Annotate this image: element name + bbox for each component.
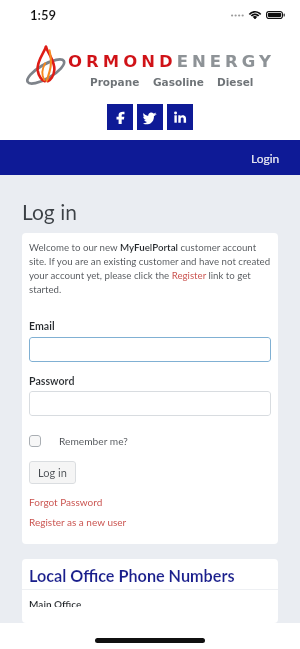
button[interactable]: LinkedIn [167,104,193,130]
staticText: Welcome to our new MyFuelPortal customer… [29,241,271,295]
button[interactable]: Twitter [137,104,163,130]
button[interactable]: Register as a new user [29,516,127,528]
button[interactable]: Forgot Password [29,496,103,508]
button[interactable]: Email input [29,337,271,362]
staticText: Register as a new user [29,516,127,528]
staticText: Password [29,375,75,388]
button[interactable]: Remember me? [29,435,128,447]
button[interactable]: Password input [29,391,271,416]
staticText: Gasoline [153,76,204,88]
staticText: Forgot Password [29,496,103,508]
button[interactable]: Log in [29,461,76,484]
staticText: Remember me? [59,435,128,447]
staticText: Propane [90,76,140,88]
staticText: Log in [38,466,67,479]
staticText: Log in [22,199,77,224]
button[interactable]: Facebook [107,104,133,130]
staticText: Main Office [29,598,82,607]
staticText: Diesel [217,76,254,88]
staticText: ORMONDENERGY [68,52,275,71]
staticText: Local Office Phone Numbers [29,566,235,585]
staticText: Login [251,151,280,165]
button[interactable]: Login [231,142,300,174]
staticText: 1:59 [30,7,56,23]
staticText: Email [29,320,55,333]
